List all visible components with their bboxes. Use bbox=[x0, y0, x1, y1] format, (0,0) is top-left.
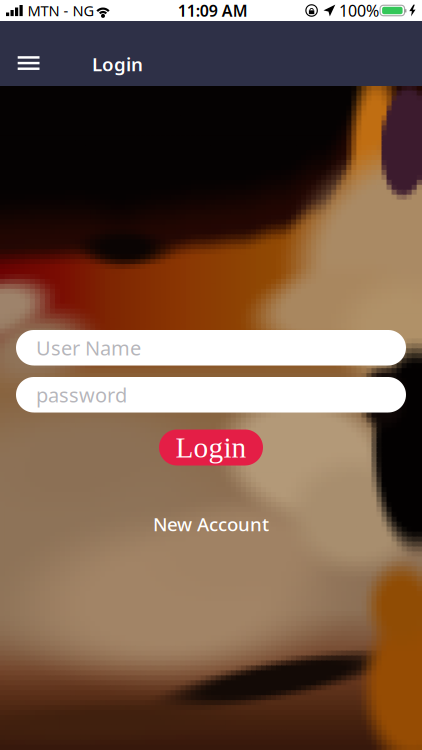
staticText: 11:09 AM bbox=[178, 0, 248, 21]
button[interactable]: New Account bbox=[147, 505, 275, 542]
button[interactable]: Login bbox=[159, 429, 263, 465]
staticText bbox=[300, 0, 305, 22]
staticText: New Account bbox=[153, 511, 269, 536]
staticText bbox=[379, 7, 380, 14]
staticText: MTN - NG bbox=[23, 1, 94, 20]
button[interactable]: password bbox=[16, 377, 406, 412]
staticText: 100% bbox=[339, 0, 379, 21]
staticText: password bbox=[36, 381, 127, 408]
button[interactable]: Menu bbox=[0, 21, 57, 86]
button[interactable]: User Name bbox=[16, 330, 406, 365]
staticText: User Name bbox=[36, 334, 141, 361]
staticText bbox=[318, 0, 323, 22]
button[interactable]: Login bbox=[0, 21, 192, 78]
staticText: Login bbox=[92, 52, 143, 76]
staticText: Login bbox=[175, 431, 246, 464]
